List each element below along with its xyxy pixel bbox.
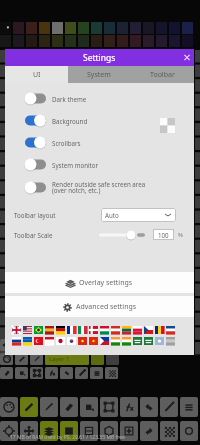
button[interactable]: Tool [106,353,119,365]
button[interactable]: Language [122,337,131,345]
button[interactable]: Tool [100,397,118,417]
button[interactable]: Tool [60,339,73,351]
button[interactable]: Tool [140,421,158,441]
button[interactable]: Advanced settings [5,296,194,317]
button[interactable]: Tool [15,367,28,379]
button[interactable]: Language [133,337,142,345]
button[interactable]: Dark theme [5,92,194,114]
button[interactable]: Tool [75,339,88,351]
button[interactable]: Tool [140,397,158,417]
button[interactable]: Tool [0,397,18,417]
button[interactable]: Language [23,337,32,345]
button[interactable]: Toolbar [130,66,194,83]
button[interactable]: Tool [30,339,43,351]
button[interactable]: Tool [60,397,78,417]
button[interactable]: Tool [40,421,58,441]
button[interactable]: Language [133,326,142,334]
button[interactable]: Tool [20,421,38,441]
button[interactable]: Tool [20,397,38,417]
button[interactable]: Language [45,337,54,345]
button[interactable]: Colour [0,22,11,34]
button[interactable]: Language [45,326,54,334]
button[interactable]: Scrollbars [5,136,194,158]
button[interactable]: Language [67,337,76,345]
button[interactable]: Language [155,337,164,345]
button[interactable]: 100 [153,229,174,240]
button[interactable]: Language [144,337,153,345]
button[interactable]: Tool [30,367,43,379]
button[interactable]: Language [111,326,120,334]
button[interactable]: Language [155,326,164,334]
button[interactable]: Language [34,337,43,345]
button[interactable]: Tool [45,339,58,351]
button[interactable]: Language [144,326,153,334]
button[interactable]: Auto [101,208,176,222]
button[interactable]: Tool [30,353,43,365]
button[interactable]: Tool [180,421,198,441]
button[interactable]: Tool [90,339,103,351]
button[interactable]: Language [78,326,87,334]
button[interactable]: Tool [75,367,88,379]
button[interactable]: Language [12,326,21,334]
button[interactable]: Language [56,326,65,334]
button[interactable]: Language [100,326,109,334]
button[interactable]: Toolbar scale slider [99,229,146,241]
button[interactable]: Close [180,49,194,66]
button[interactable]: Tool [80,397,98,417]
button[interactable]: Tool [100,421,118,441]
button[interactable]: Tool [0,353,13,365]
button[interactable]: Tool [0,367,13,379]
button[interactable]: Language [166,337,175,345]
button[interactable]: Tool [40,397,58,417]
button[interactable]: Tool [0,421,18,441]
button[interactable]: Render outside safe screen area (over no… [5,180,194,202]
button[interactable]: Tool [45,367,58,379]
button[interactable]: Tool [180,397,198,417]
button[interactable]: Language [34,326,43,334]
button[interactable]: Language [23,326,32,334]
button[interactable]: Language [111,337,120,345]
button[interactable]: Tool [15,353,28,365]
button[interactable]: Tool [80,421,98,441]
button[interactable]: Tool [15,339,28,351]
button[interactable]: Language [166,326,175,334]
button[interactable]: Tool [160,421,178,441]
button[interactable]: Language [67,326,76,334]
button[interactable]: Language [89,337,98,345]
button[interactable]: Tool [105,339,118,351]
button[interactable]: Tool [160,397,178,417]
button[interactable]: Tool [91,353,104,365]
button[interactable]: Tool [60,421,78,441]
button[interactable]: Background [5,114,194,136]
button[interactable]: System [68,66,130,83]
button[interactable]: Tool [0,339,13,351]
button[interactable]: Language [56,337,65,345]
button[interactable]: Tool [60,367,73,379]
button[interactable]: Layer 1 [45,353,89,365]
button[interactable]: Tool [120,421,138,441]
